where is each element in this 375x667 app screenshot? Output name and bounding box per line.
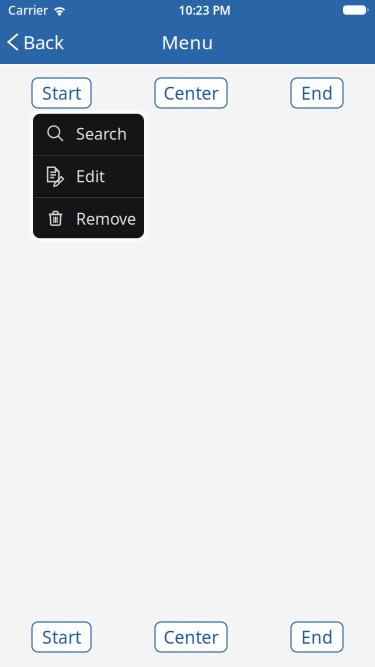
staticText: Start xyxy=(42,625,81,648)
staticText: Search xyxy=(76,123,127,144)
staticText: Menu xyxy=(161,30,213,54)
button[interactable]: Center xyxy=(155,622,227,652)
staticText: End xyxy=(301,81,333,104)
button[interactable]: Start xyxy=(32,622,91,652)
button[interactable]: End xyxy=(291,622,343,652)
staticText: Remove xyxy=(76,208,136,229)
button[interactable]: Search xyxy=(33,113,144,154)
staticText: 10:23 PM xyxy=(178,2,230,18)
button[interactable]: Back xyxy=(0,20,76,64)
button[interactable]: Remove xyxy=(33,198,144,239)
button[interactable]: Start xyxy=(32,78,91,108)
staticText: Start xyxy=(42,81,81,104)
staticText: End xyxy=(301,625,333,648)
staticText: Edit xyxy=(76,165,105,187)
staticText: Carrier xyxy=(8,2,48,18)
staticText: Center xyxy=(163,625,218,648)
button[interactable]: Center xyxy=(155,78,227,108)
button[interactable]: Edit xyxy=(33,155,144,196)
button[interactable]: End xyxy=(291,78,343,108)
staticText: Back xyxy=(23,30,64,54)
staticText: Center xyxy=(163,81,218,104)
